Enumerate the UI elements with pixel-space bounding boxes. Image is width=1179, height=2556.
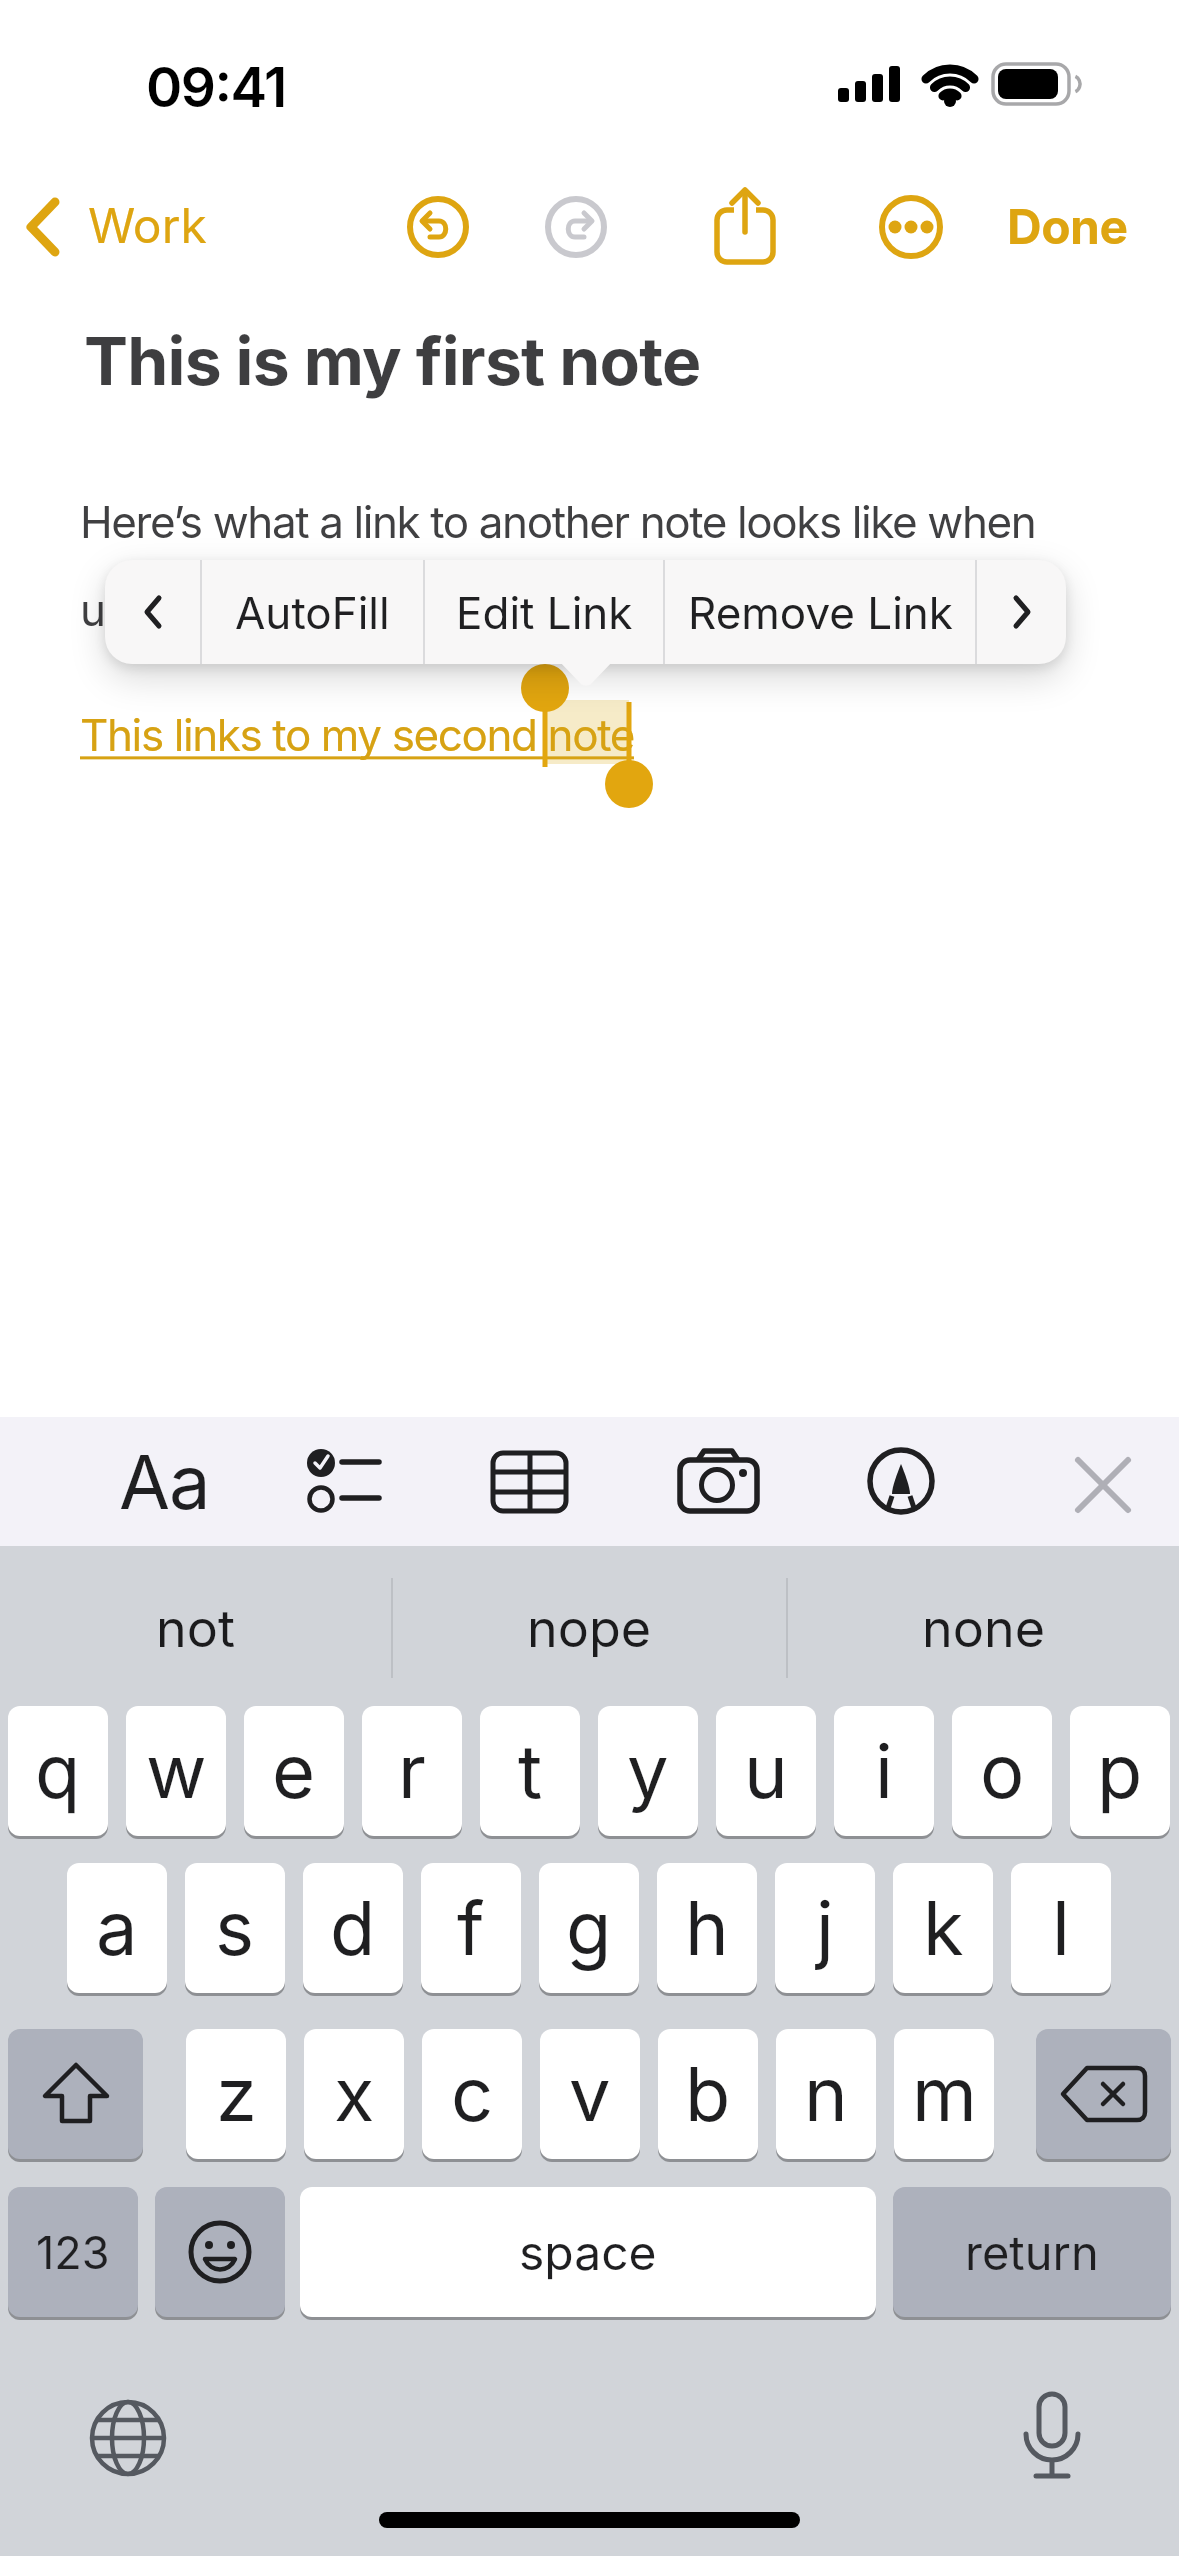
staticText: k bbox=[923, 1883, 964, 1973]
button[interactable]: k bbox=[893, 1863, 993, 1996]
button[interactable]: space bbox=[300, 2187, 876, 2320]
button[interactable]: u bbox=[716, 1706, 816, 1839]
button[interactable] bbox=[1055, 1430, 1155, 1535]
button[interactable]: d bbox=[303, 1863, 403, 1996]
staticText: t bbox=[518, 1726, 543, 1816]
button[interactable]: h bbox=[657, 1863, 757, 1996]
button[interactable] bbox=[80, 2390, 176, 2486]
button[interactable]: g bbox=[539, 1863, 639, 1996]
staticText: return bbox=[965, 2224, 1099, 2281]
button[interactable] bbox=[1004, 2384, 1100, 2488]
button[interactable]: t bbox=[480, 1706, 580, 1839]
button[interactable]: o bbox=[952, 1706, 1052, 1839]
button[interactable] bbox=[8, 2029, 143, 2162]
button[interactable]: Edit Link bbox=[425, 560, 663, 664]
button[interactable]: e bbox=[244, 1706, 344, 1839]
button[interactable]: z bbox=[186, 2029, 286, 2162]
staticText: nope bbox=[527, 1597, 652, 1660]
button[interactable] bbox=[105, 560, 200, 664]
staticText: j bbox=[816, 1883, 834, 1973]
button[interactable]: none bbox=[788, 1576, 1179, 1680]
staticText: h bbox=[685, 1883, 729, 1973]
button[interactable] bbox=[660, 1430, 790, 1535]
staticText: i bbox=[875, 1726, 893, 1816]
staticText: v bbox=[569, 2049, 611, 2139]
button[interactable]: j bbox=[775, 1863, 875, 1996]
button[interactable]: c bbox=[422, 2029, 522, 2162]
staticText: u bbox=[80, 583, 105, 636]
staticText: 123 bbox=[36, 2225, 110, 2279]
button[interactable] bbox=[1036, 2029, 1171, 2162]
button[interactable]: x bbox=[304, 2029, 404, 2162]
button[interactable]: Aa bbox=[100, 1430, 220, 1530]
staticText: This is my first note bbox=[84, 321, 701, 401]
button[interactable]: s bbox=[185, 1863, 285, 1996]
button[interactable]: l bbox=[1011, 1863, 1111, 1996]
button[interactable]: This links to my second note bbox=[80, 708, 634, 761]
button[interactable] bbox=[544, 195, 608, 259]
button[interactable]: 123 bbox=[8, 2187, 138, 2320]
button[interactable]: m bbox=[894, 2029, 994, 2162]
staticText: 09:41 bbox=[146, 54, 286, 121]
button[interactable]: r bbox=[362, 1706, 462, 1839]
staticText: Aa bbox=[119, 1437, 210, 1527]
button[interactable]: Done bbox=[1007, 197, 1128, 255]
button[interactable] bbox=[710, 184, 780, 268]
staticText: space bbox=[519, 2223, 657, 2281]
staticText: x bbox=[334, 2049, 375, 2139]
button[interactable] bbox=[977, 560, 1066, 664]
staticText: Here’s what a link to another note looks… bbox=[80, 495, 1036, 548]
button[interactable]: i bbox=[834, 1706, 934, 1839]
staticText: Remove Link bbox=[688, 586, 953, 639]
staticText: e bbox=[272, 1726, 316, 1816]
staticText: c bbox=[451, 2049, 494, 2139]
staticText: o bbox=[980, 1726, 1025, 1816]
button[interactable] bbox=[879, 195, 943, 259]
button[interactable]: nope bbox=[393, 1576, 786, 1680]
button[interactable] bbox=[470, 1430, 590, 1535]
staticText: n bbox=[804, 2049, 848, 2139]
staticText: not bbox=[156, 1597, 235, 1660]
staticText: y bbox=[627, 1726, 669, 1816]
button[interactable]: return bbox=[893, 2187, 1171, 2320]
staticText: l bbox=[1052, 1883, 1070, 1973]
staticText: none bbox=[922, 1597, 1045, 1660]
button[interactable] bbox=[406, 195, 470, 259]
staticText: q bbox=[35, 1726, 81, 1816]
staticText: z bbox=[216, 2049, 257, 2139]
button[interactable]: p bbox=[1070, 1706, 1170, 1839]
button[interactable]: Work bbox=[20, 192, 220, 262]
staticText: Edit Link bbox=[456, 586, 633, 639]
staticText: r bbox=[398, 1726, 426, 1816]
button[interactable]: a bbox=[67, 1863, 167, 1996]
staticText: w bbox=[146, 1726, 207, 1816]
staticText: Work bbox=[88, 196, 207, 254]
staticText: a bbox=[96, 1883, 138, 1973]
staticText: f bbox=[457, 1883, 485, 1973]
button[interactable]: b bbox=[658, 2029, 758, 2162]
button[interactable] bbox=[850, 1430, 955, 1535]
button[interactable]: y bbox=[598, 1706, 698, 1839]
staticText: u bbox=[744, 1726, 788, 1816]
staticText: d bbox=[330, 1883, 376, 1973]
staticText: s bbox=[215, 1883, 255, 1973]
staticText: AutoFill bbox=[235, 586, 390, 639]
button[interactable]: not bbox=[0, 1576, 391, 1680]
staticText: b bbox=[685, 2049, 731, 2139]
button[interactable] bbox=[155, 2187, 285, 2320]
button[interactable]: w bbox=[126, 1706, 226, 1839]
button[interactable] bbox=[280, 1425, 400, 1535]
button[interactable]: AutoFill bbox=[202, 560, 423, 664]
button[interactable]: Remove Link bbox=[665, 560, 975, 664]
button[interactable]: f bbox=[421, 1863, 521, 1996]
button[interactable]: q bbox=[8, 1706, 108, 1839]
staticText: p bbox=[1097, 1726, 1143, 1816]
button[interactable]: n bbox=[776, 2029, 876, 2162]
button[interactable]: v bbox=[540, 2029, 640, 2162]
staticText: g bbox=[566, 1883, 612, 1973]
staticText: m bbox=[912, 2049, 977, 2139]
